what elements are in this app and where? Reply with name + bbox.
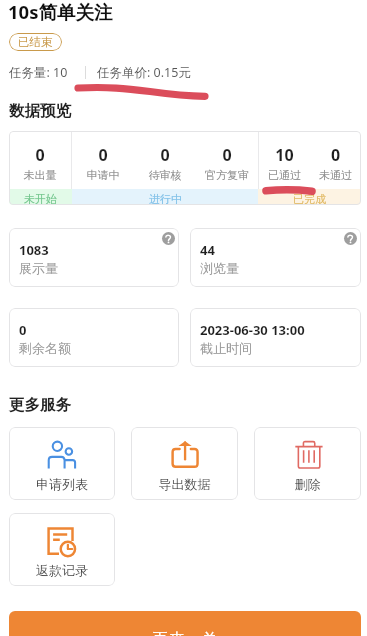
- staticText: 0: [134, 144, 196, 166]
- staticText: 已结束: [18, 35, 53, 49]
- staticText: 已完成: [293, 192, 326, 205]
- staticText: 0: [19, 321, 27, 339]
- button[interactable]: 0: [310, 131, 361, 189]
- staticText: 剩余名额: [19, 340, 71, 356]
- staticText: 展示量: [19, 260, 58, 276]
- button[interactable]: 1083: [9, 228, 179, 287]
- staticText: 未通过: [310, 168, 361, 182]
- staticText: 待审核: [134, 168, 196, 182]
- staticText: 申请中: [72, 168, 134, 182]
- staticText: 申请列表: [9, 476, 115, 492]
- staticText: 1083: [19, 241, 49, 259]
- staticText: 10s简单关注: [8, 0, 113, 24]
- staticText: 任务单价: 0.15元: [97, 64, 191, 80]
- other: Help: [344, 232, 357, 245]
- button[interactable]: 0: [196, 131, 258, 189]
- button[interactable]: 0: [9, 131, 71, 189]
- staticText: 任务量: 10: [9, 64, 68, 80]
- staticText: 返款记录: [9, 562, 115, 578]
- staticText: 10: [259, 144, 310, 166]
- staticText: 导出数据: [131, 476, 238, 492]
- staticText: 已通过: [259, 168, 310, 182]
- staticText: 再来一单: [152, 629, 218, 636]
- staticText: 进行中: [149, 192, 182, 205]
- staticText: 更多服务: [9, 395, 71, 415]
- staticText: 0: [9, 144, 71, 166]
- button[interactable]: 返款记录: [9, 513, 115, 586]
- staticText: 0: [196, 144, 258, 166]
- button[interactable]: 导出数据: [131, 427, 238, 500]
- staticText: 44: [200, 241, 215, 259]
- button[interactable]: 2023-06-30 13:00: [190, 308, 361, 367]
- button[interactable]: 10: [259, 131, 310, 189]
- staticText: 未出量: [9, 168, 71, 182]
- button[interactable]: 44: [190, 228, 361, 287]
- button[interactable]: 0: [9, 308, 179, 367]
- staticText: 0: [72, 144, 134, 166]
- staticText: 2023-06-30 13:00: [200, 321, 305, 339]
- button[interactable]: 再来一单: [9, 611, 361, 636]
- staticText: 截止时间: [200, 340, 252, 356]
- staticText: 浏览量: [200, 260, 239, 276]
- staticText: 0: [310, 144, 361, 166]
- staticText: 删除: [254, 476, 361, 492]
- staticText: 未开始: [24, 192, 57, 205]
- button[interactable]: 删除: [254, 427, 361, 500]
- staticText: 官方复审: [196, 168, 258, 182]
- button[interactable]: 0: [72, 131, 134, 189]
- other: Help: [162, 232, 175, 245]
- button[interactable]: 已结束: [9, 33, 62, 51]
- staticText: 数据预览: [9, 101, 71, 121]
- button[interactable]: 0: [134, 131, 196, 189]
- button[interactable]: 申请列表: [9, 427, 115, 500]
